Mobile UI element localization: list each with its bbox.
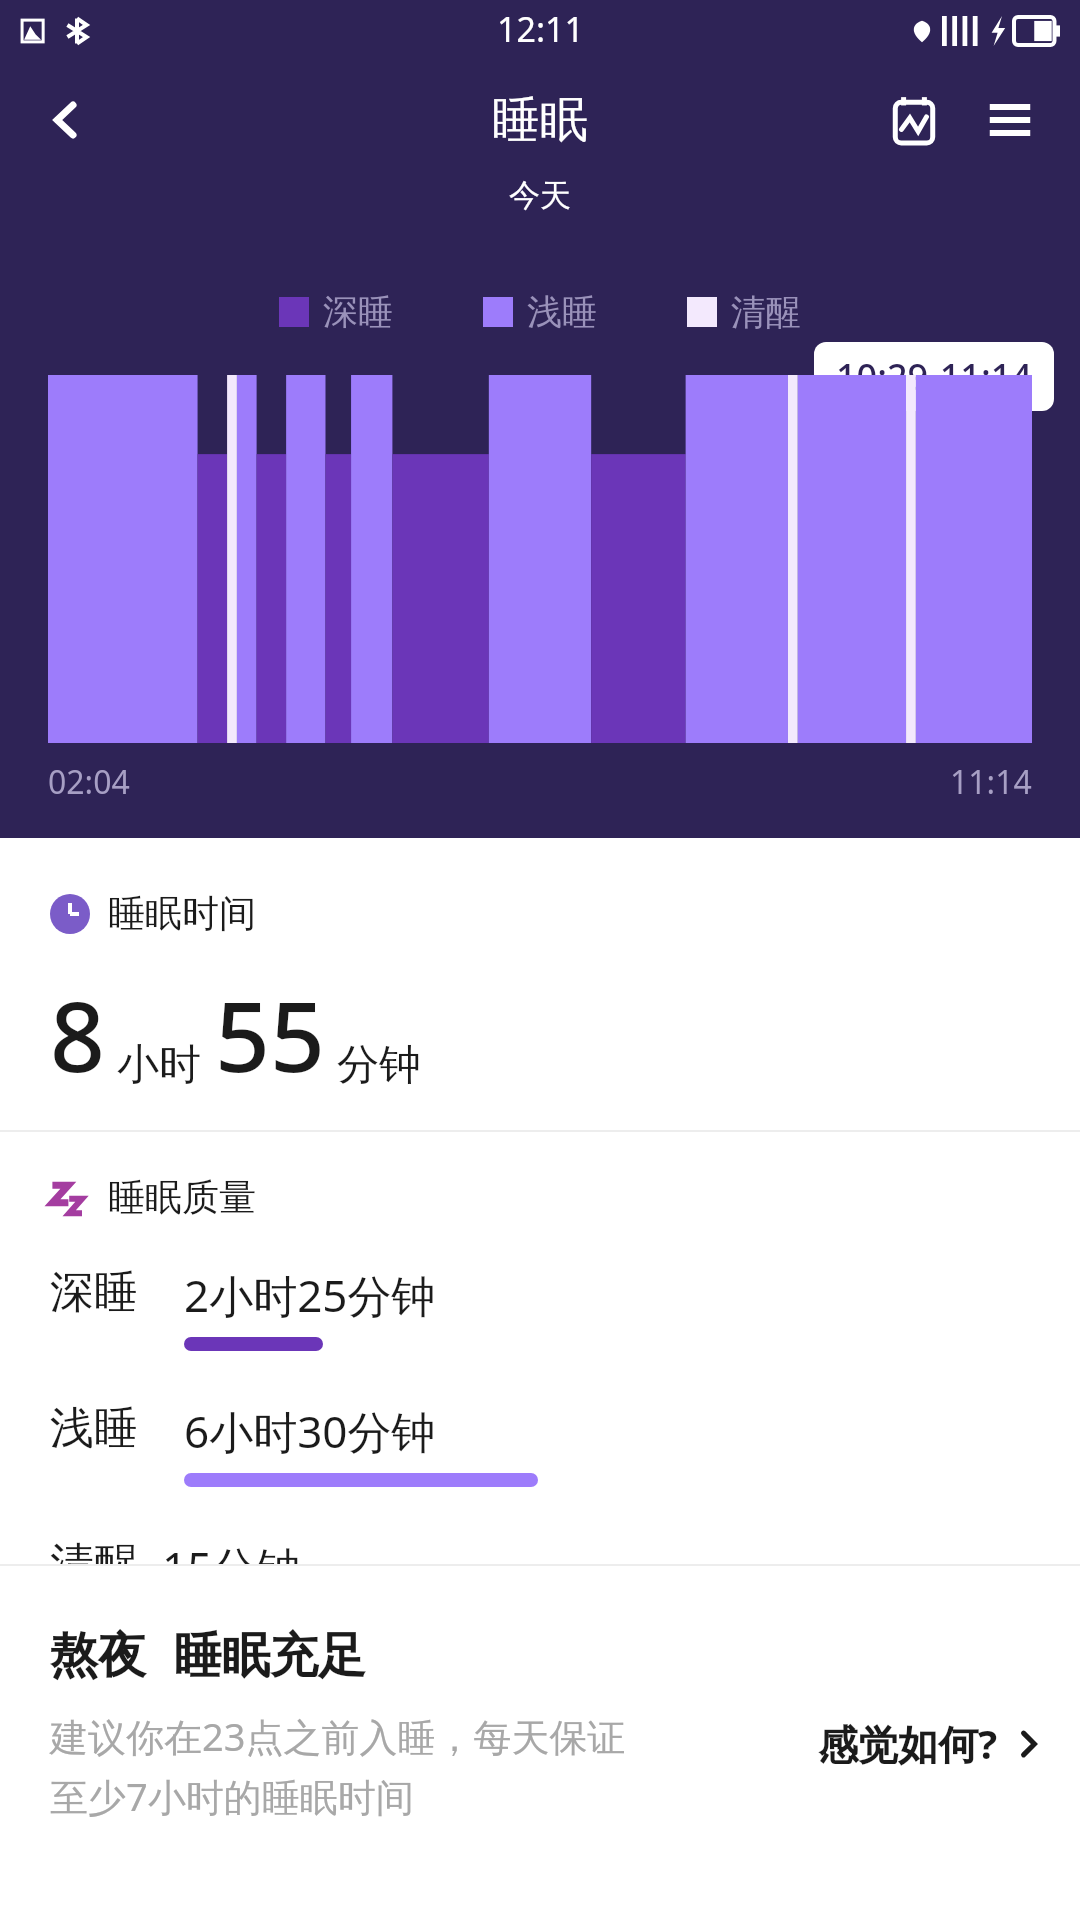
staticText: 清醒: [731, 290, 801, 334]
staticText: 至少7小时的睡眠时间: [50, 1770, 414, 1822]
button[interactable]: 感觉如何?: [818, 1716, 1046, 1771]
staticText: 熬夜: [50, 1626, 146, 1686]
staticText: 8: [50, 969, 105, 1100]
staticText: 02:04: [48, 760, 130, 804]
staticText: 55: [215, 969, 325, 1100]
staticText: 12:11: [497, 6, 584, 52]
staticText: 感觉如何?: [818, 1716, 998, 1771]
staticText: 6小时30分钟: [184, 1401, 436, 1461]
staticText: 深睡: [50, 1265, 160, 1320]
staticText: 10:29-11:14: [836, 352, 1032, 401]
staticText: 睡眠时间: [108, 890, 256, 937]
staticText: 建议你在23点之前入睡，每天保证: [50, 1710, 626, 1762]
staticText: 15分钟: [162, 1537, 301, 1564]
staticText: 浅睡: [50, 1401, 160, 1456]
staticText: 睡眠: [492, 90, 588, 150]
staticText: 11:14: [950, 760, 1032, 804]
staticText: 睡眠质量: [108, 1174, 256, 1221]
staticText: 浅睡: [527, 290, 597, 334]
staticText: 清醒: [50, 1537, 138, 1564]
staticText: 2小时25分钟: [184, 1265, 436, 1325]
staticText: 睡眠充足: [174, 1626, 366, 1686]
button[interactable]: Back: [18, 72, 114, 168]
staticText: 小时: [117, 1039, 201, 1092]
staticText: 今天: [0, 176, 1080, 215]
button[interactable]: History chart: [866, 72, 962, 168]
staticText: 深睡: [323, 290, 393, 334]
staticText: 分钟: [337, 1039, 421, 1092]
button[interactable]: Menu: [962, 72, 1058, 168]
